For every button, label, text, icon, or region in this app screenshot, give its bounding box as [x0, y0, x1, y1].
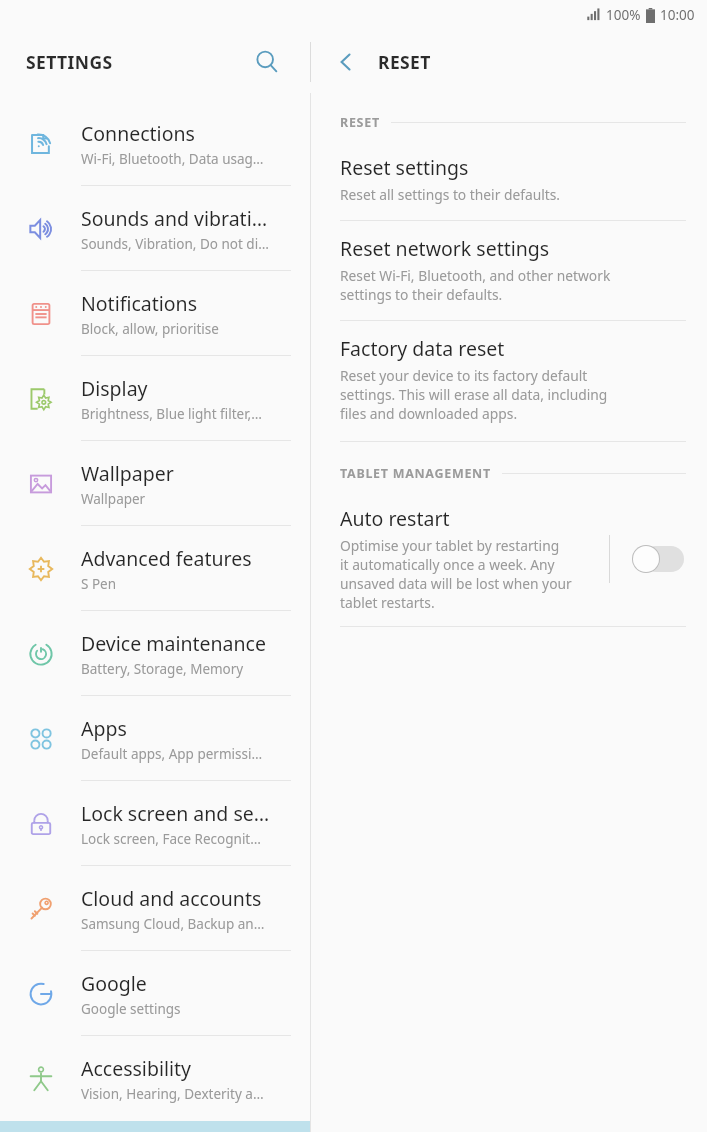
staticText: Brightness, Blue light filter,…	[81, 405, 262, 423]
staticText: Default apps, App permissi…	[81, 745, 263, 763]
staticText: Battery, Storage, Memory	[81, 660, 244, 678]
button[interactable]: Lock screen and se…	[0, 781, 311, 866]
button[interactable]: Sounds and vibrati…	[0, 186, 311, 271]
staticText: tablet restarts.	[340, 593, 435, 612]
button[interactable]: Device maintenance	[0, 611, 311, 696]
button[interactable]: Google	[0, 951, 311, 1036]
staticText: it automatically once a week. Any	[340, 555, 555, 574]
button[interactable]: Reset settings	[311, 144, 707, 221]
staticText: Sounds and vibrati…	[81, 205, 268, 232]
staticText: Wallpaper	[81, 460, 174, 487]
staticText: unsaved data will be lost when your	[340, 574, 572, 593]
staticText: Optimise your tablet by restarting	[340, 536, 560, 555]
staticText: Cloud and accounts	[81, 885, 262, 912]
staticText: Sounds, Vibration, Do not di…	[81, 235, 269, 253]
staticText: Wallpaper	[81, 490, 146, 508]
button[interactable]: Accessibility	[0, 1036, 311, 1121]
staticText: Lock screen, Face Recognit…	[81, 830, 261, 848]
button[interactable]: Wallpaper	[0, 441, 311, 526]
staticText: Auto restart	[340, 505, 450, 532]
button[interactable]: Advanced features	[0, 526, 311, 611]
button[interactable]: Back	[323, 39, 369, 85]
staticText: Vision, Hearing, Dexterity a…	[81, 1085, 264, 1103]
staticText: 10:00	[660, 6, 695, 24]
staticText: Reset Wi-Fi, Bluetooth, and other networ…	[340, 266, 611, 285]
staticText: files and downloaded apps.	[340, 404, 518, 423]
staticText: Notifications	[81, 290, 197, 317]
button[interactable]: Apps	[0, 696, 311, 781]
staticText: RESET	[378, 50, 431, 74]
staticText: Factory data reset	[340, 335, 505, 362]
button[interactable]: Auto restart	[311, 495, 707, 627]
button[interactable]: Cloud and accounts	[0, 866, 311, 951]
staticText: Reset settings	[340, 154, 469, 181]
staticText: Accessibility	[81, 1055, 191, 1082]
staticText: Display	[81, 375, 148, 402]
staticText: Reset all settings to their defaults.	[340, 185, 561, 204]
staticText: Wi-Fi, Bluetooth, Data usag…	[81, 150, 264, 168]
staticText: TABLET MANAGEMENT	[340, 465, 491, 482]
staticText: Google settings	[81, 1000, 181, 1018]
button[interactable]: Reset network settings	[311, 221, 707, 321]
staticText: Advanced features	[81, 545, 252, 572]
staticText: Samsung Cloud, Backup an…	[81, 915, 265, 933]
button[interactable]: Display	[0, 356, 311, 441]
button[interactable]: Auto restart toggle	[632, 544, 684, 574]
staticText: Lock screen and se…	[81, 800, 270, 827]
staticText: Reset your device to its factory default	[340, 366, 588, 385]
button[interactable]: Notifications	[0, 271, 311, 356]
staticText: settings. This will erase all data, incl…	[340, 385, 608, 404]
staticText: Block, allow, prioritise	[81, 320, 219, 338]
staticText: S Pen	[81, 575, 117, 593]
button[interactable]: Search	[245, 40, 289, 84]
staticText: RESET	[340, 114, 380, 131]
button[interactable]: Connections	[0, 101, 311, 186]
staticText: Connections	[81, 120, 195, 147]
staticText: Apps	[81, 715, 127, 742]
staticText: Google	[81, 970, 147, 997]
staticText: SETTINGS	[26, 50, 113, 74]
staticText: 100%	[606, 6, 641, 24]
button[interactable]: Factory data reset	[311, 321, 707, 442]
staticText: Device maintenance	[81, 630, 266, 657]
staticText: settings to their defaults.	[340, 285, 503, 304]
staticText: Reset network settings	[340, 235, 550, 262]
